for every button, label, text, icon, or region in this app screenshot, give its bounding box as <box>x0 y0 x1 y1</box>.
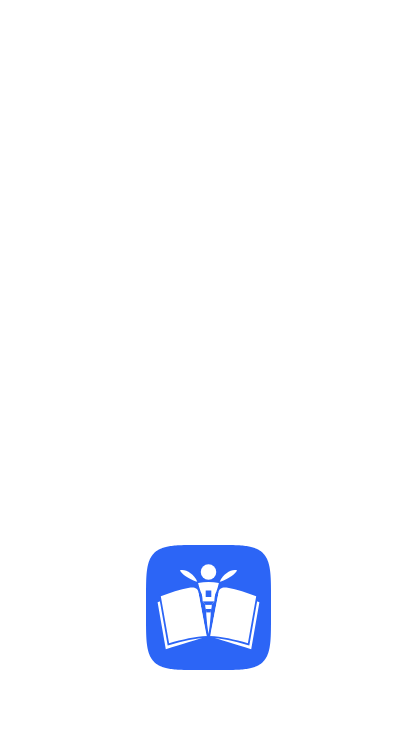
button[interactable]: App logo <box>146 545 271 670</box>
